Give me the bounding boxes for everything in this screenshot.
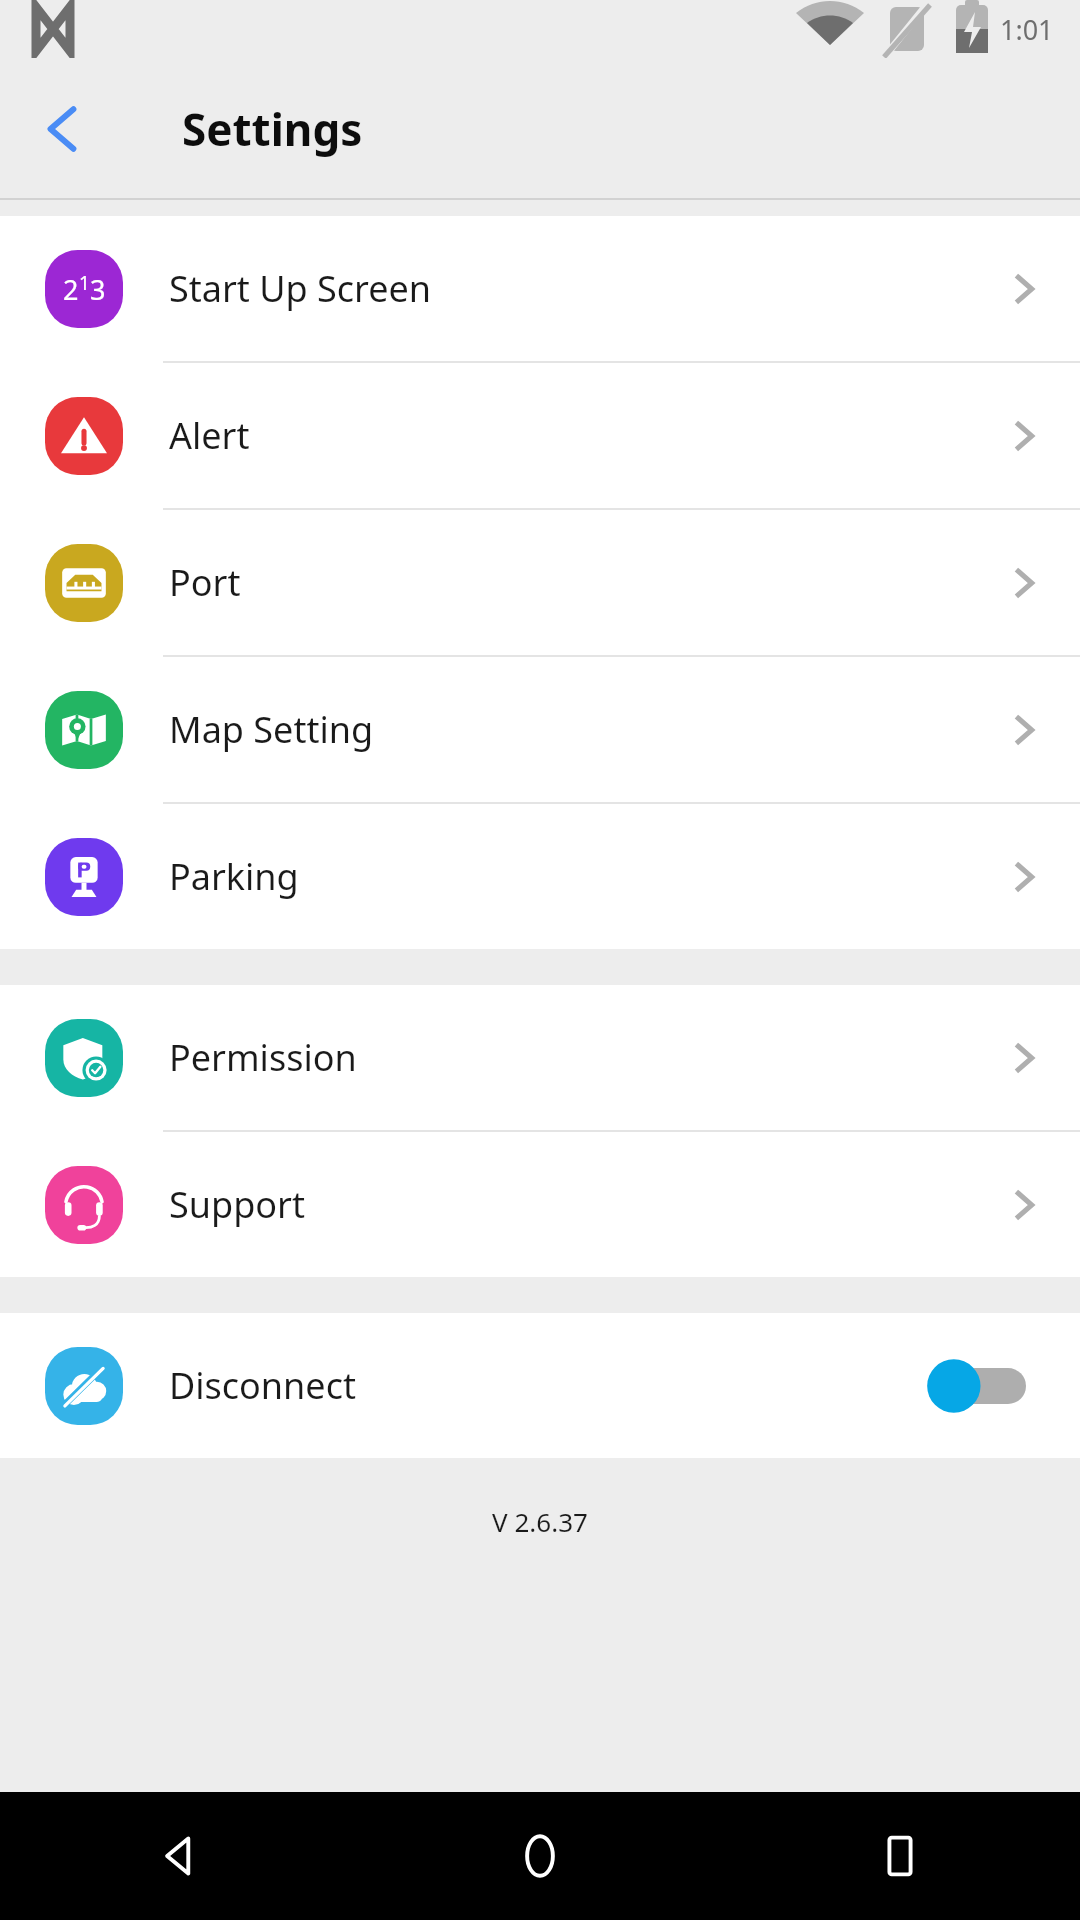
button[interactable]: Port: [0, 510, 1080, 655]
button[interactable]: Home: [360, 1792, 720, 1920]
button[interactable]: Map Setting: [0, 657, 1080, 802]
button[interactable]: 2: [0, 216, 1080, 361]
staticText: 1: [79, 270, 90, 296]
staticText: Port: [169, 558, 1004, 607]
staticText: Disconnect: [169, 1361, 926, 1410]
staticText: 2: [63, 271, 79, 308]
button[interactable]: Disconnect toggle: [926, 1357, 1026, 1415]
staticText: Start Up Screen: [169, 264, 1004, 313]
button[interactable]: Disconnect: [0, 1313, 1080, 1458]
staticText: Alert: [169, 411, 1004, 460]
button[interactable]: Permission: [0, 985, 1080, 1130]
button[interactable]: Recent apps: [720, 1792, 1080, 1920]
staticText: V 2.6.37: [492, 1504, 588, 1539]
staticText: Support: [169, 1180, 1004, 1229]
button[interactable]: Alert: [0, 363, 1080, 508]
button[interactable]: Back: [24, 90, 102, 168]
staticText: Settings: [182, 99, 363, 159]
staticText: Parking: [169, 852, 1004, 901]
button[interactable]: Back: [0, 1792, 360, 1920]
staticText: 3: [90, 271, 106, 308]
button[interactable]: Parking: [0, 804, 1080, 949]
button[interactable]: Support: [0, 1132, 1080, 1277]
staticText: Map Setting: [169, 705, 1004, 754]
staticText: Permission: [169, 1033, 1004, 1082]
staticText: 1:01: [1000, 11, 1054, 48]
